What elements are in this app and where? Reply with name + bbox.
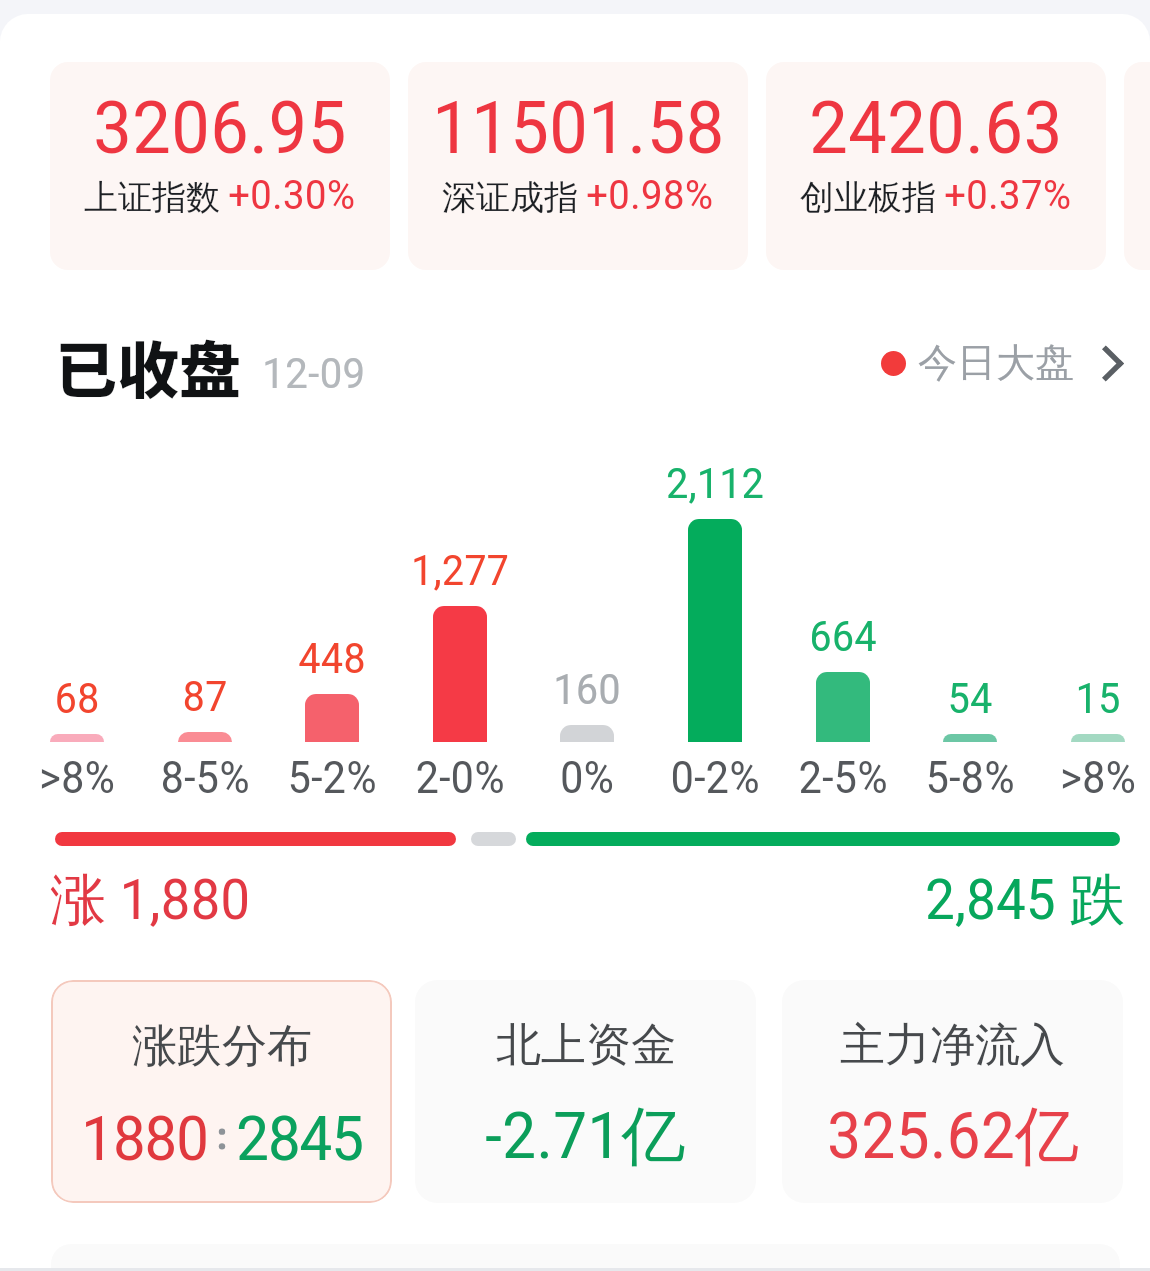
other: Open today's market [1104, 348, 1122, 379]
staticText: 5-8% [906, 752, 1034, 804]
staticText: 今日大盘 [918, 338, 1074, 387]
button[interactable]: 11501.58 [408, 62, 748, 270]
staticText: >8% [1034, 752, 1150, 804]
staticText: +0.30% [228, 171, 356, 219]
staticText: 涨 1,880 [50, 865, 251, 936]
staticText: 664 [779, 612, 907, 661]
staticText: 涨跌分布 [132, 1018, 312, 1075]
staticText: 54 [906, 674, 1034, 723]
staticText: +0.37% [944, 171, 1072, 219]
staticText: 68 [13, 674, 141, 723]
staticText: 11501.58 [432, 85, 725, 171]
button[interactable]: 主力净流入 [782, 980, 1123, 1203]
button[interactable]: 3206.95 [50, 62, 390, 270]
staticText: 3206.95 [93, 85, 347, 171]
staticText: 8-5% [141, 752, 269, 804]
staticText: 主力净流入 [840, 1017, 1065, 1074]
staticText: 5-2% [268, 752, 396, 804]
staticText: 北上资金 [496, 1017, 676, 1074]
staticText: 1,277 [396, 546, 524, 595]
staticText: 2-5% [779, 752, 907, 804]
staticText: 0-2% [651, 752, 779, 804]
staticText: 325.62亿 [827, 1096, 1079, 1177]
staticText: -2.71亿 [485, 1096, 686, 1177]
button[interactable]: 涨跌分布 [51, 980, 392, 1203]
staticText: 2,112 [651, 459, 779, 508]
staticText: 上证指数 [84, 176, 220, 219]
staticText: 12-09 [262, 348, 366, 398]
staticText: 深证成指 [442, 176, 578, 219]
staticText: 15 [1034, 674, 1150, 723]
staticText: 448 [268, 634, 396, 683]
staticText: 2,845 跌 [925, 865, 1126, 936]
staticText: +0.98% [586, 171, 714, 219]
staticText: 1880 [81, 1102, 208, 1175]
staticText: 160 [523, 665, 651, 714]
staticText: 创业板指 [800, 176, 936, 219]
staticText: 2420.63 [809, 85, 1063, 171]
staticText: 2-0% [396, 752, 524, 804]
button[interactable]: 北上资金 [415, 980, 756, 1203]
staticText: 87 [141, 672, 269, 721]
staticText: 已收盘 [55, 321, 242, 401]
staticText: >8% [13, 752, 141, 804]
staticText: 0% [523, 752, 651, 804]
button[interactable]: 2420.63 [766, 62, 1106, 270]
staticText: 2845 [236, 1102, 363, 1175]
button[interactable]: 今日大盘 [881, 332, 1122, 394]
